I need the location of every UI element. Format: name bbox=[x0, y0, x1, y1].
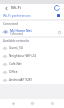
button[interactable]: My Home Net bbox=[0, 27, 64, 36]
staticText: Guest_5G bbox=[9, 46, 23, 50]
button[interactable]: Settings bbox=[45, 99, 59, 108]
button[interactable]: Cafe-Net bbox=[0, 60, 64, 68]
button[interactable]: Neighbour WiFi 24 bbox=[0, 52, 64, 60]
staticText: AndroidAP 9281 bbox=[9, 78, 33, 82]
button[interactable]: Office bbox=[0, 68, 64, 76]
staticText: Connected bbox=[10, 32, 24, 36]
staticText: Wi-Fi preferences bbox=[3, 13, 31, 18]
button[interactable]: Back bbox=[3, 5, 9, 11]
staticText: Cafe-Net bbox=[9, 62, 22, 66]
button[interactable]: Toggle bbox=[57, 14, 60, 17]
staticText: Neighbour WiFi 24 bbox=[9, 54, 36, 58]
button[interactable]: Scanning bbox=[53, 4, 61, 12]
button[interactable]: Wi-Fi preferences bbox=[3, 13, 31, 18]
button[interactable]: AndroidAP 9281 bbox=[0, 76, 64, 84]
button[interactable]: Home bbox=[6, 99, 20, 108]
staticText: Office bbox=[9, 70, 18, 74]
button[interactable]: Network bbox=[25, 99, 39, 108]
staticText: Wi-Fi bbox=[11, 5, 21, 11]
staticText: My Home Net bbox=[10, 28, 32, 32]
button[interactable]: Network details bbox=[57, 30, 61, 34]
staticText: Available networks bbox=[3, 39, 30, 43]
button[interactable]: Guest_5G bbox=[0, 44, 64, 52]
staticText: Connected bbox=[3, 22, 18, 26]
